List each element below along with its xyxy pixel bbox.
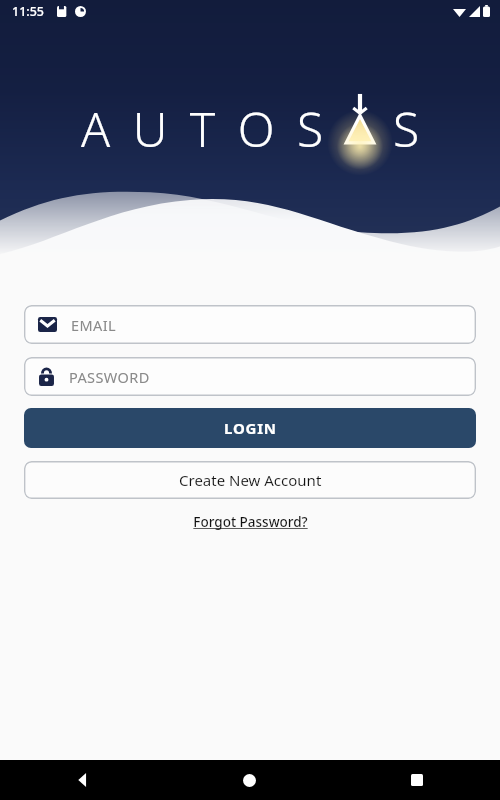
button[interactable]: Recent apps — [333, 760, 500, 800]
staticText: 11:55 — [12, 3, 45, 20]
button[interactable]: EMAIL — [24, 305, 476, 344]
button[interactable]: Forgot Password? — [189, 509, 312, 535]
staticText: S — [393, 96, 420, 161]
button[interactable]: LOGIN — [24, 408, 476, 448]
staticText: PASSWORD — [69, 367, 150, 387]
staticText: EMAIL — [71, 315, 116, 335]
button[interactable]: PASSWORD — [24, 357, 476, 396]
button[interactable]: Back — [0, 760, 166, 800]
staticText: A U T O S — [81, 96, 329, 161]
staticText: Create New Account — [179, 470, 322, 490]
staticText: LOGIN — [224, 418, 277, 438]
button[interactable]: Home — [166, 760, 333, 800]
button[interactable]: Create New Account — [24, 461, 476, 499]
